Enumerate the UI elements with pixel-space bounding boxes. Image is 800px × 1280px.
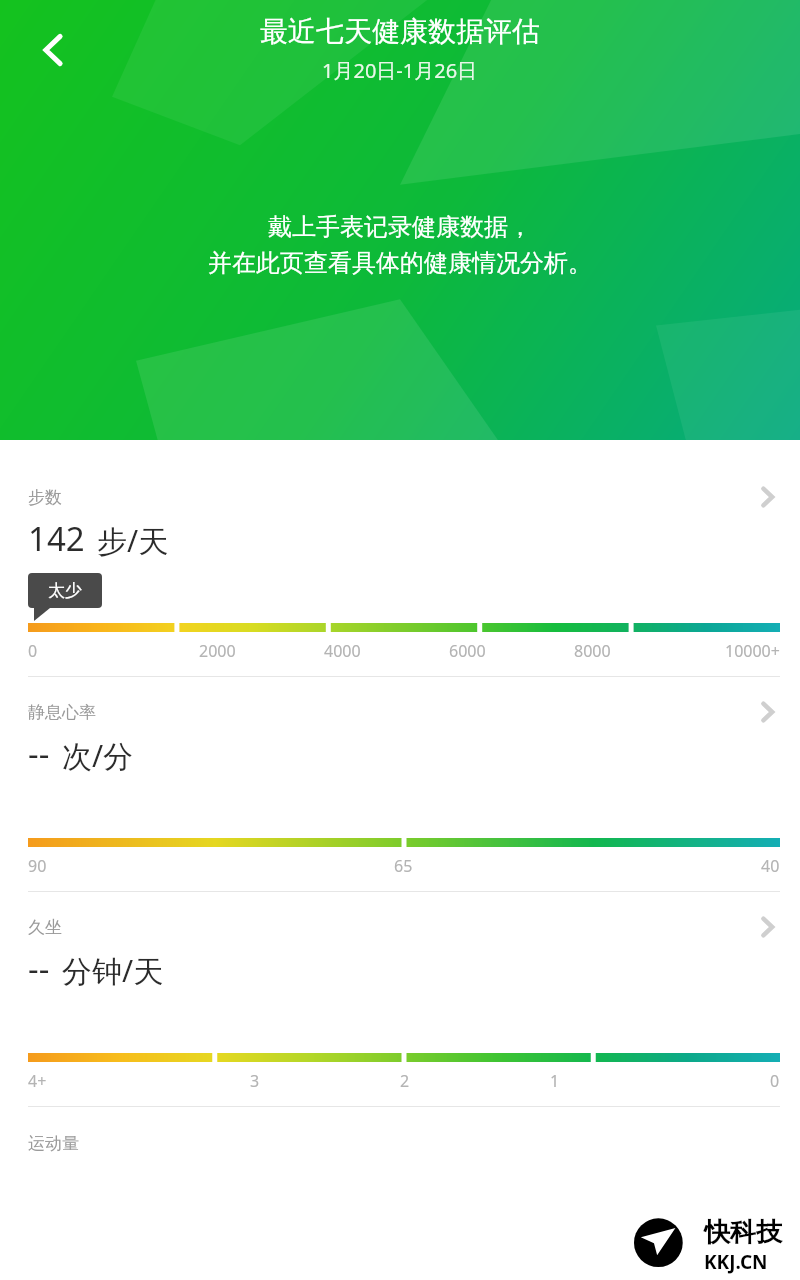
staticText: 分钟/天 bbox=[62, 950, 164, 991]
staticText: 0 bbox=[28, 640, 38, 662]
staticText: 太少 bbox=[48, 580, 82, 601]
staticText: KKJ.CN bbox=[704, 1249, 768, 1274]
staticText: -- bbox=[28, 731, 50, 776]
staticText: 步数 bbox=[28, 487, 62, 508]
staticText: 6000 bbox=[449, 640, 486, 662]
button[interactable]: 静息心率 bbox=[0, 677, 800, 891]
staticText: 最近七天健康数据评估 bbox=[260, 14, 540, 49]
staticText: 并在此页查看具体的健康情况分析。 bbox=[208, 248, 592, 278]
staticText: 90 bbox=[28, 855, 47, 877]
staticText: 久坐 bbox=[28, 917, 62, 938]
staticText: 快科技 bbox=[704, 1216, 782, 1249]
staticText: 10000+ bbox=[725, 640, 780, 662]
staticText: 65 bbox=[394, 855, 413, 877]
staticText: 1 bbox=[550, 1070, 560, 1092]
button[interactable]: 久坐 bbox=[0, 892, 800, 1106]
staticText: 次/分 bbox=[62, 735, 134, 776]
staticText: 2 bbox=[400, 1070, 410, 1092]
staticText: 1月20日-1月26日 bbox=[322, 57, 478, 84]
button[interactable]: 运动量 bbox=[0, 1133, 800, 1154]
staticText: 戴上手表记录健康数据， bbox=[268, 212, 532, 242]
staticText: -- bbox=[28, 946, 50, 991]
staticText: 步/天 bbox=[97, 520, 169, 561]
button[interactable]: Back bbox=[18, 14, 90, 86]
button[interactable]: 步数 bbox=[0, 462, 800, 676]
staticText: 运动量 bbox=[28, 1133, 79, 1154]
staticText: 4000 bbox=[324, 640, 361, 662]
staticText: 4+ bbox=[28, 1070, 47, 1092]
staticText: 3 bbox=[250, 1070, 260, 1092]
staticText: 40 bbox=[761, 855, 780, 877]
staticText: 2000 bbox=[199, 640, 236, 662]
staticText: 静息心率 bbox=[28, 702, 96, 723]
staticText: 8000 bbox=[574, 640, 611, 662]
staticText: 142 bbox=[28, 516, 85, 561]
staticText: 0 bbox=[770, 1070, 780, 1092]
